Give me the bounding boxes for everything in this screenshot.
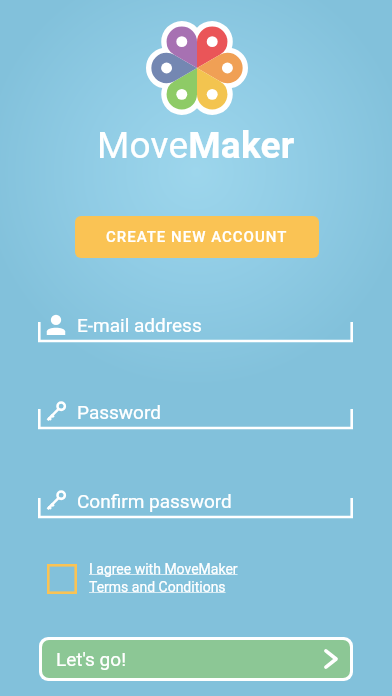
other: Password [45,490,67,512]
button[interactable]: Password [38,476,353,521]
button[interactable]: Password [38,387,353,432]
button[interactable]: Accept terms checkbox [47,561,238,595]
button[interactable]: Let's go! [42,640,350,678]
button[interactable]: Account [38,300,353,345]
staticText: E-mail address [77,314,202,336]
other: Account [45,314,67,336]
other: Continue [324,649,338,669]
staticText: CREATE NEW ACCOUNT [106,228,288,246]
staticText: Password [77,401,161,423]
staticText: Terms and Conditions [89,579,226,595]
button[interactable]: CREATE NEW ACCOUNT [75,216,319,258]
other: Password [45,401,67,423]
other: Accept terms checkbox [47,564,77,594]
staticText: Let's go! [56,648,127,670]
staticText: MoveMaker [97,124,295,167]
staticText: I agree with MoveMaker [89,561,238,577]
staticText: Confirm password [77,490,232,512]
